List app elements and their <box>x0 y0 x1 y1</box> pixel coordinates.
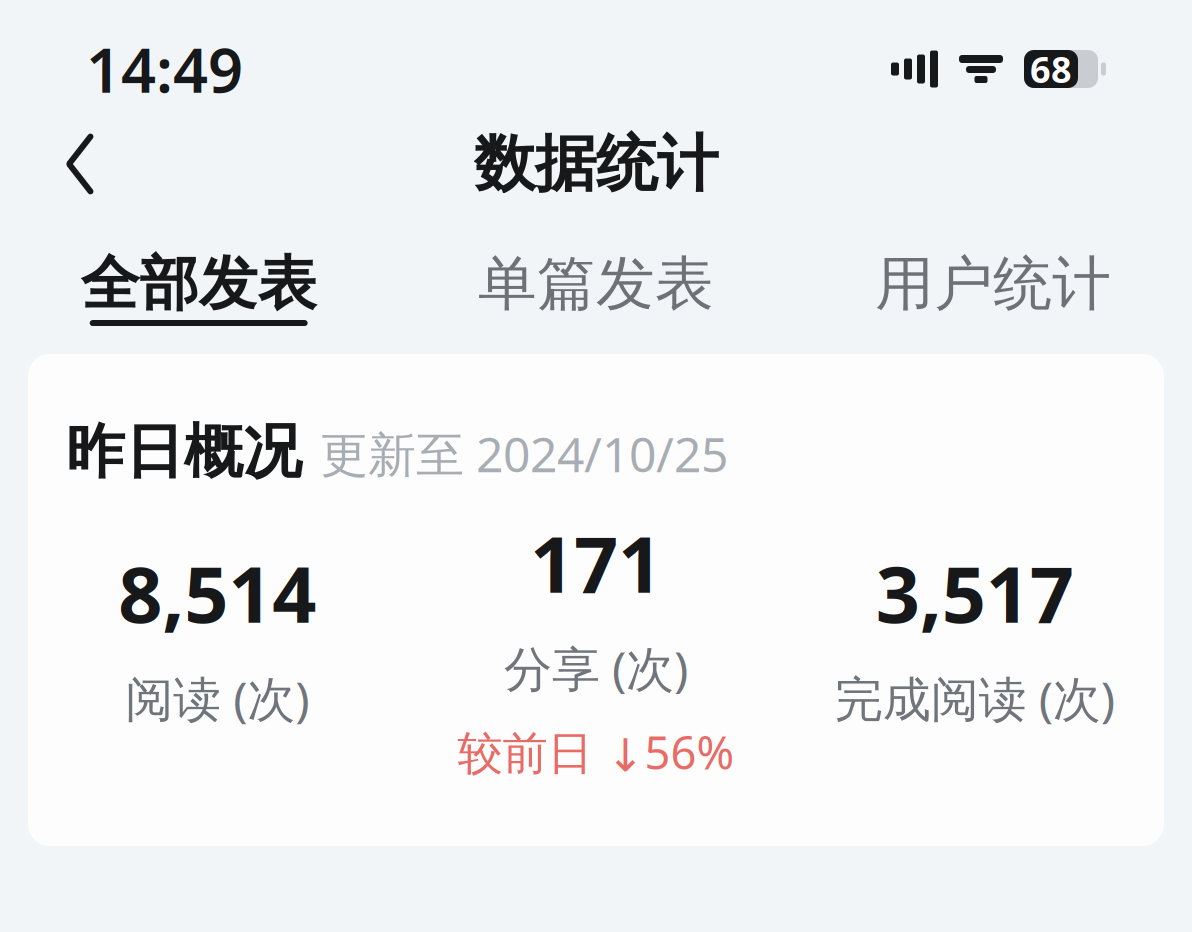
staticText: 171 <box>530 511 662 614</box>
staticText: 14:49 <box>86 28 243 110</box>
staticText: 全部发表 <box>81 248 317 320</box>
staticText: 数据统计 <box>474 126 718 202</box>
staticText: 3,517 <box>876 541 1074 644</box>
button[interactable]: 用户统计 <box>795 224 1192 354</box>
button[interactable]: 全部发表 <box>0 224 397 354</box>
button[interactable]: 单篇发表 <box>397 224 795 354</box>
staticText: 完成阅读 (次) <box>835 666 1115 730</box>
staticText: 用户统计 <box>875 248 1111 320</box>
staticText: 昨日概况 <box>66 416 302 488</box>
staticText: 更新至 2024/10/25 <box>320 422 728 485</box>
staticText: 阅读 (次) <box>125 666 309 730</box>
staticText: 68 <box>1030 45 1072 93</box>
staticText: 分享 (次) <box>504 636 688 700</box>
staticText: 单篇发表 <box>478 248 714 320</box>
button[interactable]: 返回 <box>36 120 124 208</box>
staticText: 8,514 <box>118 541 316 644</box>
staticText: 较前日 ↓56% <box>457 722 734 782</box>
